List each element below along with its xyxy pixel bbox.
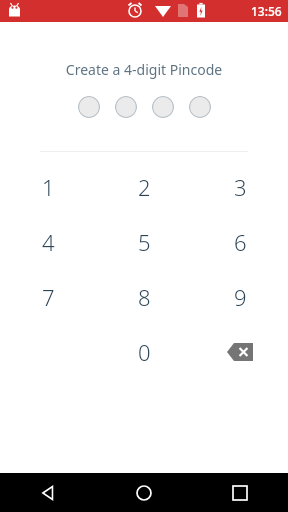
staticText: 13:56 (251, 3, 282, 19)
button[interactable]: 7 (0, 269, 96, 324)
staticText: Create a 4-digit Pincode (0, 60, 288, 79)
staticText: 8 (138, 282, 151, 312)
staticText: 9 (234, 282, 247, 312)
button[interactable]: 8 (96, 269, 192, 324)
button[interactable]: Recent apps (218, 473, 262, 512)
staticText: 2 (138, 172, 151, 202)
staticText: 5 (138, 227, 151, 257)
button[interactable]: 6 (192, 214, 288, 269)
button[interactable]: 1 (0, 159, 96, 214)
staticText: 3 (234, 172, 247, 202)
staticText: 4 (42, 227, 55, 257)
button[interactable]: 9 (192, 269, 288, 324)
staticText: 1 (42, 172, 55, 202)
button[interactable]: 0 (96, 324, 192, 379)
button[interactable]: 5 (96, 214, 192, 269)
button[interactable]: 3 (192, 159, 288, 214)
staticText: 6 (234, 227, 247, 257)
button[interactable]: Home (122, 473, 166, 512)
button[interactable]: 4 (0, 214, 96, 269)
button[interactable]: Backspace (192, 324, 288, 379)
other: Backspace (227, 343, 253, 361)
staticText: 0 (138, 337, 151, 367)
staticText: 7 (42, 282, 55, 312)
button[interactable]: Back (26, 473, 70, 512)
button[interactable]: 2 (96, 159, 192, 214)
